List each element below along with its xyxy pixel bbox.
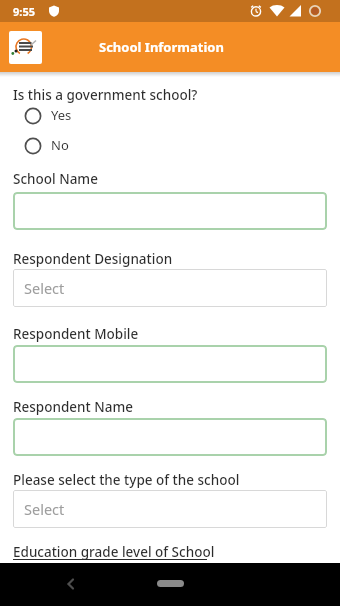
- button[interactable]: [13, 192, 327, 230]
- staticText: Yes: [51, 106, 72, 124]
- staticText: Respondent Mobile: [13, 325, 139, 343]
- button[interactable]: No: [24, 135, 69, 155]
- staticText: Respondent Designation: [13, 250, 173, 268]
- button[interactable]: [9, 31, 42, 64]
- button[interactable]: Yes: [24, 105, 72, 125]
- staticText: School Name: [13, 170, 98, 188]
- button[interactable]: Select: [13, 490, 327, 528]
- button[interactable]: [56, 570, 84, 598]
- button[interactable]: [157, 580, 184, 587]
- staticText: Education grade level of School: [13, 543, 215, 561]
- staticText: Select: [24, 278, 65, 298]
- staticText: Please select the type of the school: [13, 471, 240, 489]
- staticText: School Information: [99, 38, 224, 56]
- staticText: 9:55: [13, 4, 35, 19]
- staticText: Respondent Name: [13, 398, 133, 416]
- staticText: Is this a government school?: [13, 86, 198, 104]
- staticText: Select: [24, 499, 65, 519]
- button[interactable]: [13, 418, 327, 456]
- staticText: No: [51, 136, 69, 154]
- button[interactable]: Select: [13, 269, 327, 307]
- button[interactable]: [13, 345, 327, 383]
